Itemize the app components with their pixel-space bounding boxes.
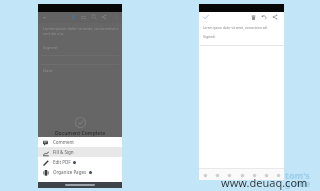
button[interactable]: Delete	[248, 12, 258, 22]
button[interactable]: Draw	[237, 170, 247, 180]
button[interactable]: Share	[270, 12, 280, 22]
staticText: Edit PDF	[53, 159, 71, 165]
button[interactable]: Search	[89, 12, 99, 22]
staticText: Document Complete	[38, 130, 122, 137]
button[interactable]: Shape	[261, 170, 271, 180]
button[interactable]: Done	[273, 170, 283, 180]
button[interactable]: Organize Pages	[38, 167, 122, 177]
button[interactable]: Text	[224, 170, 234, 180]
staticText: Fill & Sign	[53, 149, 74, 155]
staticText: Date:	[43, 68, 54, 74]
staticText: www.deuaq.com	[221, 175, 308, 190]
button[interactable]: Sign	[212, 170, 222, 180]
staticText: Lorem ipsum dolor sit amet, consectetur …	[43, 26, 119, 31]
staticText: sed do eiu.	[43, 31, 65, 37]
button[interactable]: Bookmark	[68, 12, 78, 22]
staticText: guide	[285, 177, 311, 189]
button[interactable]: Undo	[259, 12, 269, 22]
button[interactable]: Done	[201, 12, 211, 22]
button[interactable]: Share	[99, 12, 109, 22]
button[interactable]: Comment	[38, 137, 122, 147]
button[interactable]: Back	[39, 12, 49, 22]
button[interactable]: Erase	[249, 170, 259, 180]
button[interactable]: Fill & Sign	[38, 147, 122, 157]
button[interactable]: View mode	[78, 12, 88, 22]
staticText: tom's	[285, 169, 310, 181]
staticText: Lorem ipsum dolor sit amet, consectetur …	[203, 26, 268, 30]
staticText: Signed:	[43, 45, 58, 51]
button[interactable]: Markup	[200, 170, 210, 180]
staticText: Organize Pages	[53, 169, 87, 175]
staticText: Signed:	[203, 34, 216, 39]
staticText: Comment	[53, 139, 74, 145]
button[interactable]: Edit PDF	[38, 157, 122, 167]
